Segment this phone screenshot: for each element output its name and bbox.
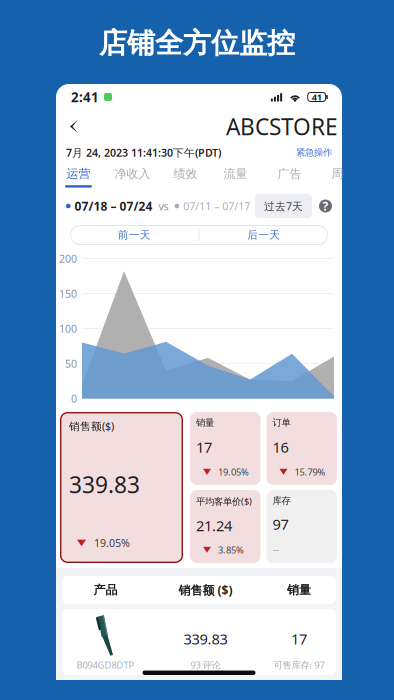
button[interactable]: 绩效 [173,161,198,190]
staticText: ? [322,198,328,214]
staticText: 周 [331,166,343,181]
staticText: 21.24 [196,516,232,535]
staticText: ABCSTORE [226,111,338,141]
staticText: 销售额($) [69,419,114,433]
button[interactable]: 紧急操作 [296,147,332,158]
staticText: 16 [272,437,288,457]
staticText: 3.85% [218,544,244,556]
button[interactable]: 前一天 [70,225,198,245]
staticText: 紧急操作 [296,147,332,158]
staticText: 17 [291,629,307,648]
staticText: B094GD8DTP [76,659,134,671]
staticText: 销量 [196,417,214,428]
staticText: 广告 [277,166,301,181]
staticText: 绩效 [173,166,197,181]
staticText: 93 评论 [190,659,220,671]
staticText: 41 [312,91,322,103]
staticText: 产品 [93,583,117,597]
button[interactable]: Back [60,111,88,142]
staticText: -- [272,542,278,556]
staticText: 97 [272,514,288,534]
staticText: 17 [196,437,212,457]
staticText: 100 [59,321,77,336]
staticText: 后一天 [247,228,280,241]
staticText: 50 [65,356,77,371]
staticText: 库存 [272,495,290,506]
staticText: 平均客单价($) [196,495,252,507]
staticText: 0 [71,391,77,406]
staticText: 销售额 ($) [178,582,232,598]
staticText: 销量 [287,583,311,597]
staticText: 可售库存: 97 [273,659,324,671]
staticText: 07/18 – 07/24 [75,198,153,214]
staticText: 前一天 [118,228,151,241]
staticText: 流量 [223,166,247,181]
staticText: 07/11 – 07/17 [183,199,250,213]
staticText: 339.83 [69,469,140,499]
staticText: 7月 24, 2023 11:41:30下午(PDT) [66,145,221,160]
button[interactable]: 广告 [277,161,302,190]
button[interactable]: 运营 [66,161,91,190]
staticText: 运营 [66,166,90,181]
staticText: 净收入 [114,166,150,181]
staticText: 2:41 [71,88,99,106]
button[interactable]: 后一天 [199,225,328,245]
button[interactable]: 过去7天 [255,194,312,218]
staticText: 店铺全方位监控 [99,26,295,60]
staticText: 339.83 [183,629,227,648]
staticText: 过去7天 [264,199,303,213]
button[interactable]: 净收入 [114,161,151,190]
staticText: 200 [59,251,77,266]
button[interactable]: Help [319,199,332,212]
staticText: 15.79% [294,466,325,478]
staticText: 19.05% [218,466,249,478]
button[interactable]: 周 [331,161,344,190]
staticText: vs [159,199,169,213]
staticText: 19.05% [94,536,130,550]
staticText: 订单 [272,417,290,428]
button[interactable]: 流量 [223,161,248,190]
staticText: 150 [59,286,77,301]
